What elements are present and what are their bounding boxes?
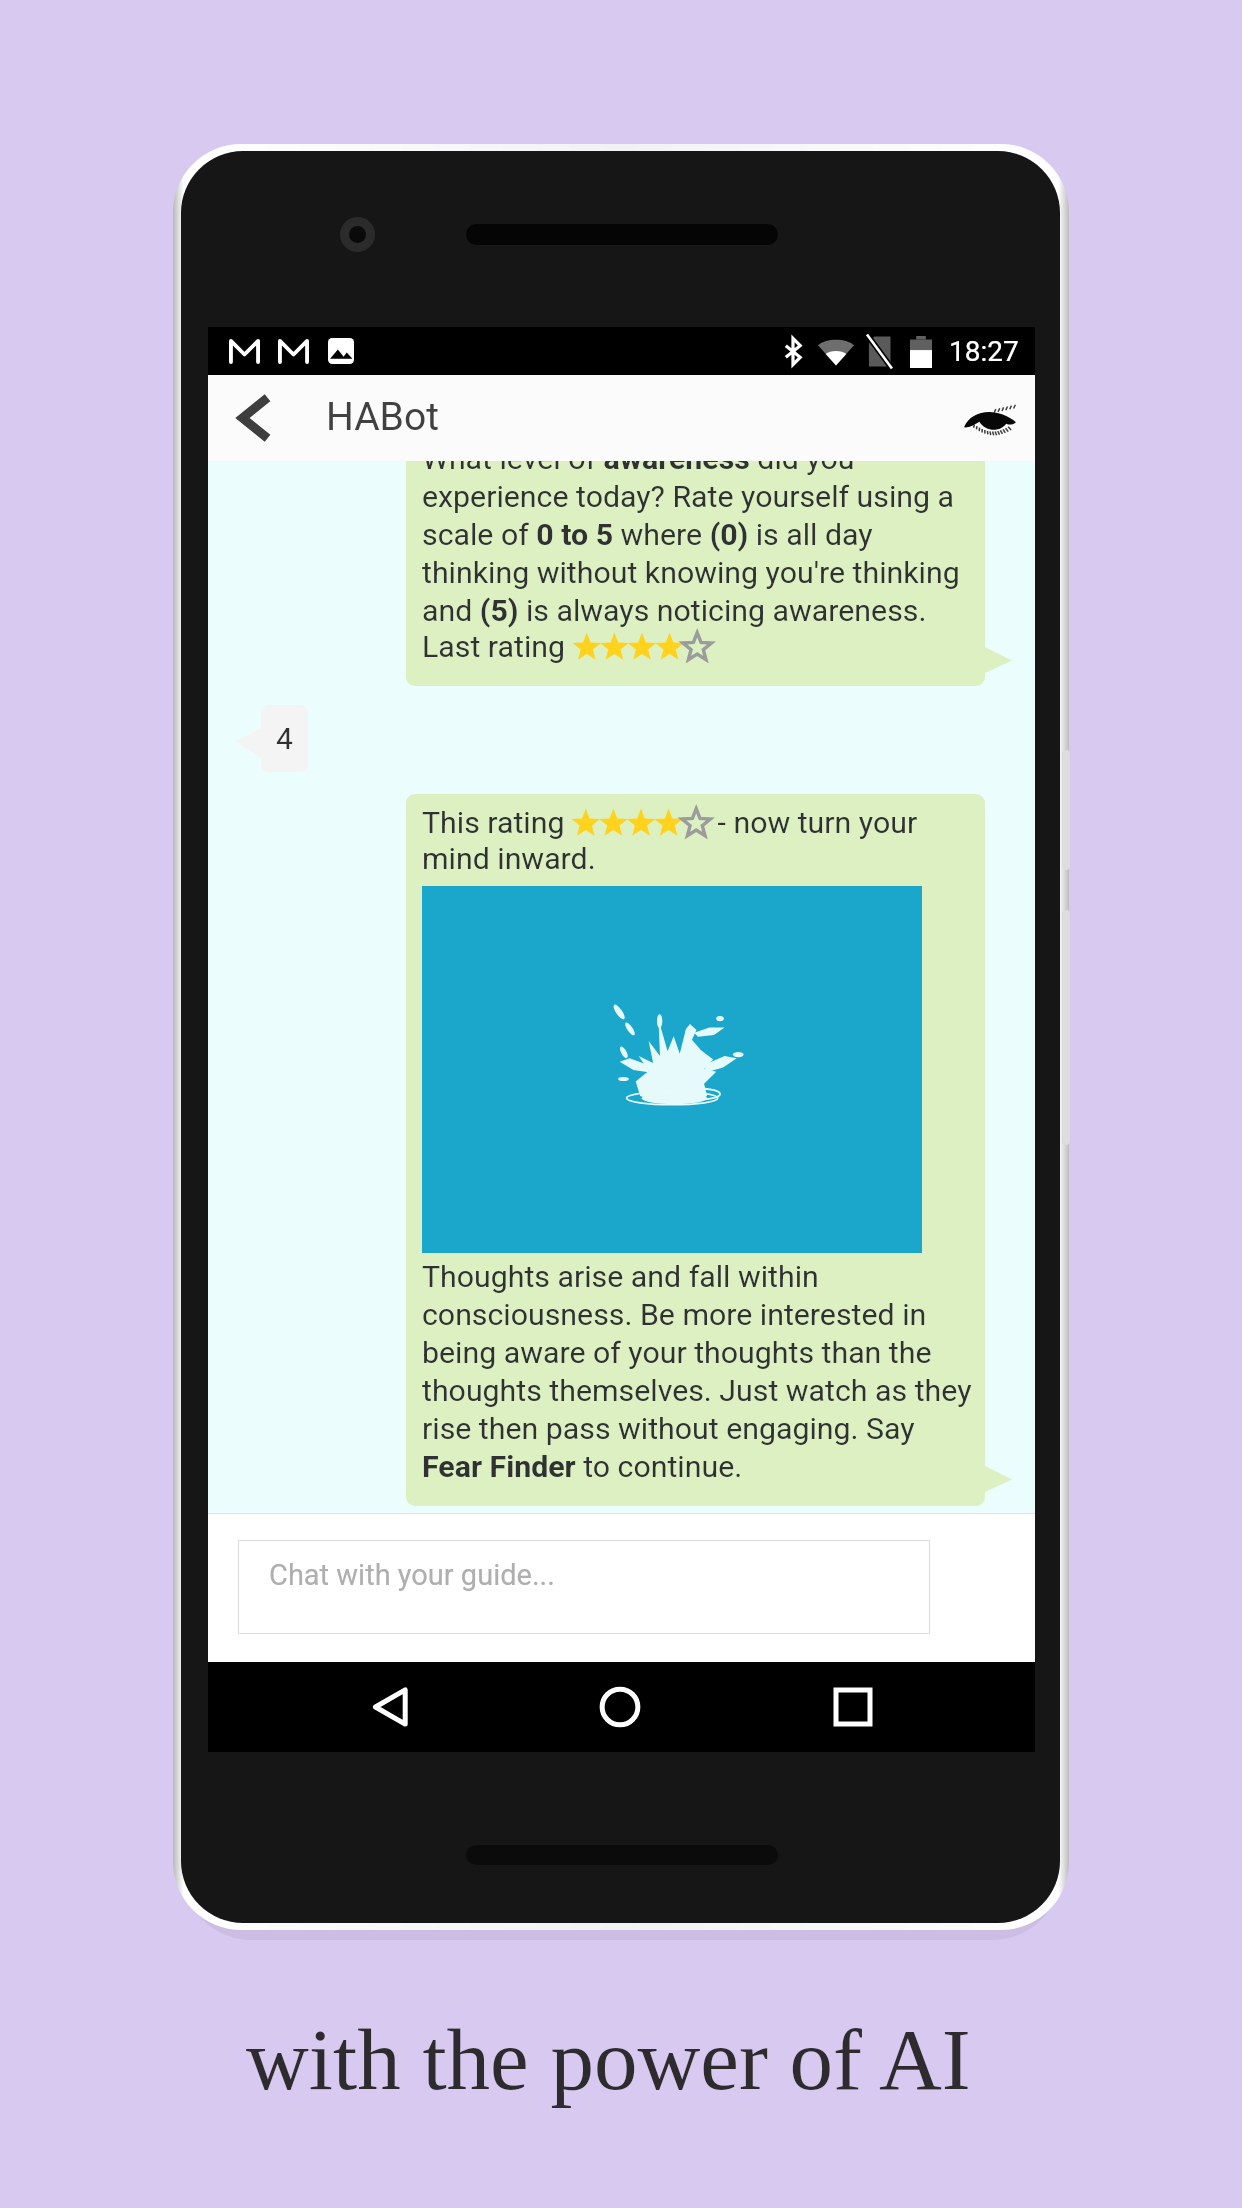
button[interactable]: Home: [575, 1662, 665, 1752]
staticText: Thoughts arise and fall within conscious…: [422, 1259, 972, 1485]
staticText: Last rating: [422, 629, 573, 665]
staticText: 4: [276, 721, 293, 756]
staticText: 18:27: [949, 335, 1019, 368]
staticText: with the power of AI: [246, 2011, 971, 2107]
staticText: Chat with your guide...: [269, 1558, 555, 1592]
staticText: This rating: [422, 805, 572, 841]
button[interactable]: Back: [214, 379, 292, 457]
staticText: HABot: [326, 394, 439, 440]
staticText: mind inward.: [422, 841, 596, 877]
button[interactable]: Back: [345, 1662, 435, 1752]
staticText: - now turn your: [710, 805, 918, 841]
button[interactable]: Recent apps: [808, 1662, 898, 1752]
button[interactable]: Chat with your guide...: [238, 1540, 930, 1634]
staticText: What level of awareness did you experien…: [422, 461, 972, 629]
button[interactable]: Show insights: [951, 379, 1029, 457]
